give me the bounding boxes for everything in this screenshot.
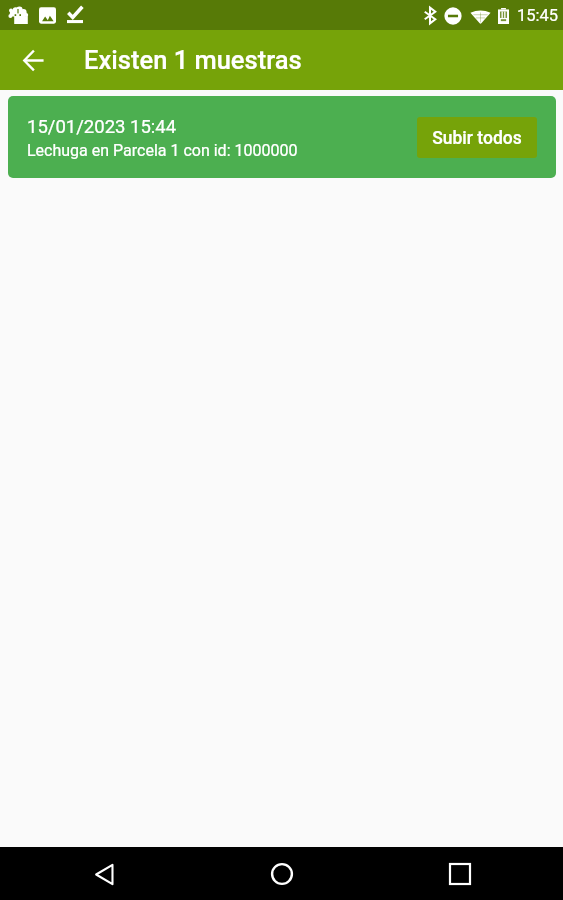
button[interactable]: 15/01/2023 15:44 [8, 96, 556, 178]
button[interactable]: Recent apps [436, 850, 484, 898]
button[interactable]: Subir todos [417, 117, 537, 158]
button[interactable]: Home [258, 850, 306, 898]
staticText: 15/01/2023 15:44 [27, 116, 177, 138]
staticText: Subir todos [432, 128, 522, 149]
staticText: Lechuga en Parcela 1 con id: 1000000 [27, 141, 298, 160]
staticText: Existen 1 muestras [84, 45, 302, 75]
button[interactable]: Navigate up [12, 39, 54, 81]
staticText: 15:45 [517, 6, 559, 25]
button[interactable]: Back [80, 850, 128, 898]
